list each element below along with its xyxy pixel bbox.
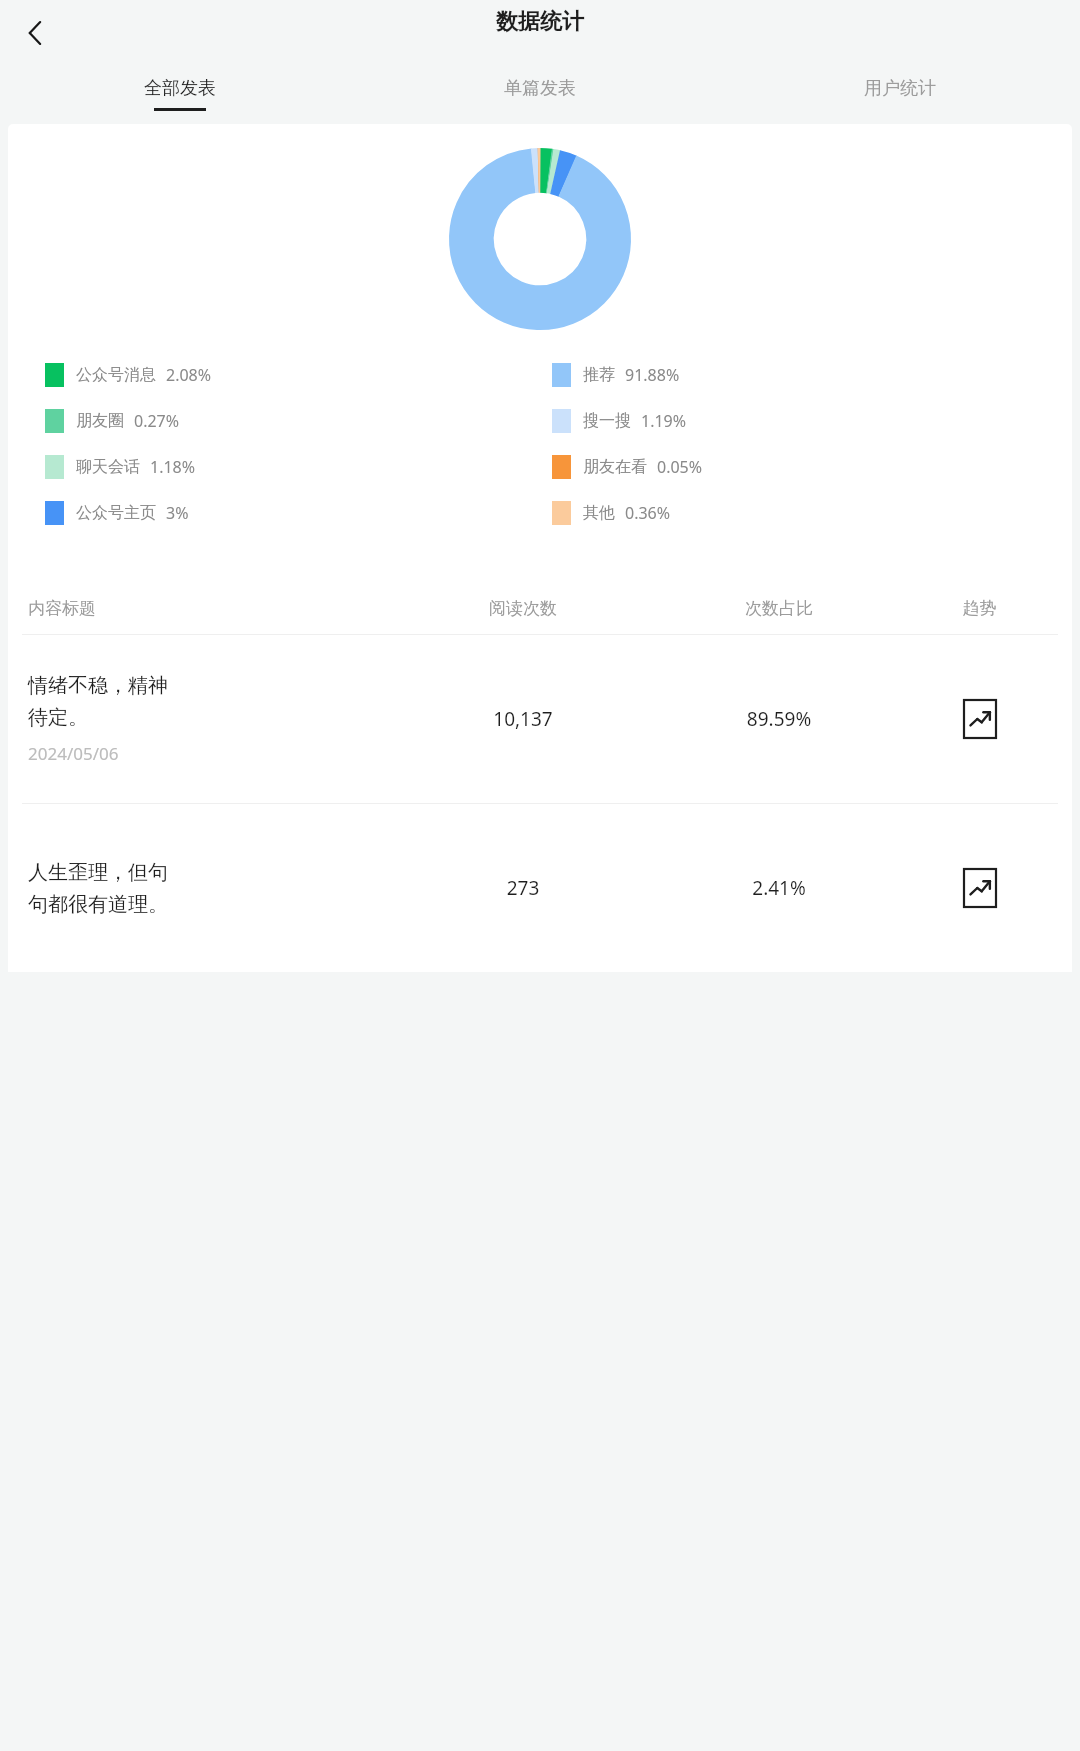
staticText: 搜一搜 — [583, 411, 631, 431]
staticText: 内容标题 — [28, 598, 395, 619]
button[interactable]: 用户统计 — [720, 66, 1080, 122]
button[interactable]: 人生歪理，但句 — [8, 804, 1072, 972]
staticText: 10,137 — [395, 706, 651, 732]
staticText: 朋友圈 — [76, 411, 124, 431]
staticText: 1.19% — [641, 410, 687, 432]
staticText: 阅读次数 — [395, 598, 651, 619]
staticText: 273 — [395, 875, 651, 901]
button[interactable]: 趋势 — [963, 868, 997, 908]
staticText: 2.08% — [166, 364, 212, 386]
staticText: 公众号消息 — [76, 365, 156, 385]
staticText: 89.59% — [651, 706, 907, 732]
staticText: 全部发表 — [144, 77, 216, 100]
staticText: 人生歪理，但句 — [28, 860, 168, 885]
staticText: 91.88% — [625, 364, 680, 386]
button[interactable]: 朋友圈 — [45, 409, 552, 433]
button[interactable]: 全部发表 — [0, 66, 360, 122]
staticText: 公众号主页 — [76, 503, 156, 523]
staticText: 情绪不稳，精神 — [28, 673, 168, 698]
staticText: 其他 — [583, 503, 615, 523]
staticText: 趋势 — [907, 598, 1052, 619]
staticText: 聊天会话 — [76, 457, 140, 477]
staticText: 朋友在看 — [583, 457, 647, 477]
button[interactable]: 单篇发表 — [360, 66, 720, 122]
staticText: 待定。 — [28, 705, 88, 730]
staticText: 句都很有道理。 — [28, 892, 168, 917]
staticText: 单篇发表 — [504, 77, 576, 100]
button[interactable]: 公众号消息 — [45, 363, 552, 387]
button[interactable]: Back — [8, 5, 64, 61]
staticText: 2.41% — [651, 875, 907, 901]
staticText: 用户统计 — [864, 77, 936, 100]
staticText: 数据统计 — [496, 8, 584, 36]
staticText: 0.05% — [657, 456, 703, 478]
button[interactable]: 聊天会话 — [45, 455, 552, 479]
staticText: 0.36% — [625, 502, 671, 524]
staticText: 0.27% — [134, 410, 180, 432]
button[interactable]: 搜一搜 — [552, 409, 1060, 433]
staticText: 1.18% — [150, 456, 196, 478]
staticText: 2024/05/06 — [28, 742, 119, 765]
staticText: 3% — [166, 502, 189, 524]
staticText: 推荐 — [583, 365, 615, 385]
button[interactable]: 朋友在看 — [552, 455, 1060, 479]
button[interactable]: 情绪不稳，精神 — [8, 635, 1072, 803]
button[interactable]: 其他 — [552, 501, 1060, 525]
button[interactable]: 趋势 — [963, 699, 997, 739]
staticText: 次数占比 — [651, 598, 907, 619]
button[interactable]: 推荐 — [552, 363, 1060, 387]
button[interactable]: 公众号主页 — [45, 501, 552, 525]
